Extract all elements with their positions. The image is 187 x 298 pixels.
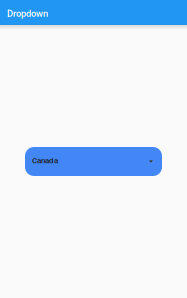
staticText: Dropdown [7, 8, 48, 19]
button[interactable]: Canada [25, 147, 162, 176]
staticText: Canada [32, 156, 58, 165]
